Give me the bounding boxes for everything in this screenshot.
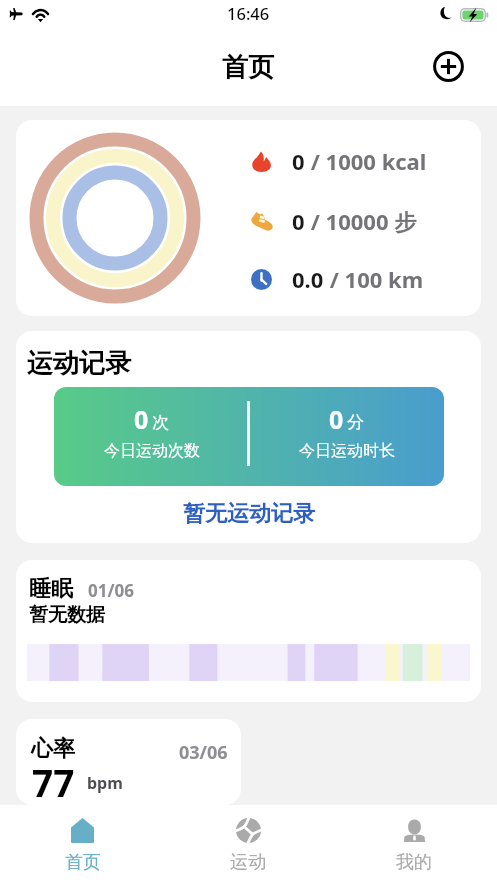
staticText: 心率 — [31, 735, 75, 763]
staticText: 0 — [292, 206, 305, 236]
staticText: 77 — [32, 757, 75, 805]
button[interactable]: 0 — [54, 387, 444, 486]
staticText: 0 — [329, 402, 344, 436]
staticText: / 1000 kcal — [305, 146, 427, 176]
button[interactable]: 首页 — [0, 805, 165, 883]
staticText: 01/06 — [88, 579, 134, 602]
staticText: 0 — [292, 146, 305, 176]
staticText: / 10000 步 — [305, 206, 417, 236]
staticText: 暂无运动记录 — [183, 500, 315, 528]
staticText: 暂无数据 — [29, 603, 105, 627]
staticText: 首页 — [65, 851, 101, 874]
button[interactable]: 运动 — [165, 805, 331, 883]
staticText: 今日运动时长 — [299, 441, 395, 461]
button[interactable]: Add — [433, 51, 464, 82]
staticText: 今日运动次数 — [104, 441, 200, 461]
staticText: 0 — [134, 402, 149, 436]
button[interactable]: 暂无运动记录 — [183, 500, 315, 528]
button[interactable]: 心率 — [16, 719, 241, 805]
staticText: 运动记录 — [27, 347, 131, 380]
staticText: 睡眠 — [29, 575, 73, 603]
staticText: 0.0 — [292, 264, 324, 294]
staticText: 运动 — [230, 851, 266, 874]
staticText: 03/06 — [179, 740, 228, 765]
staticText: / 100 km — [324, 264, 424, 294]
staticText: 16:46 — [227, 2, 270, 24]
button[interactable]: 我的 — [331, 805, 497, 883]
staticText: 我的 — [396, 851, 432, 874]
staticText: 次 — [152, 412, 169, 433]
staticText: 分 — [347, 412, 364, 433]
staticText: bpm — [87, 772, 123, 794]
staticText: 首页 — [222, 51, 274, 84]
